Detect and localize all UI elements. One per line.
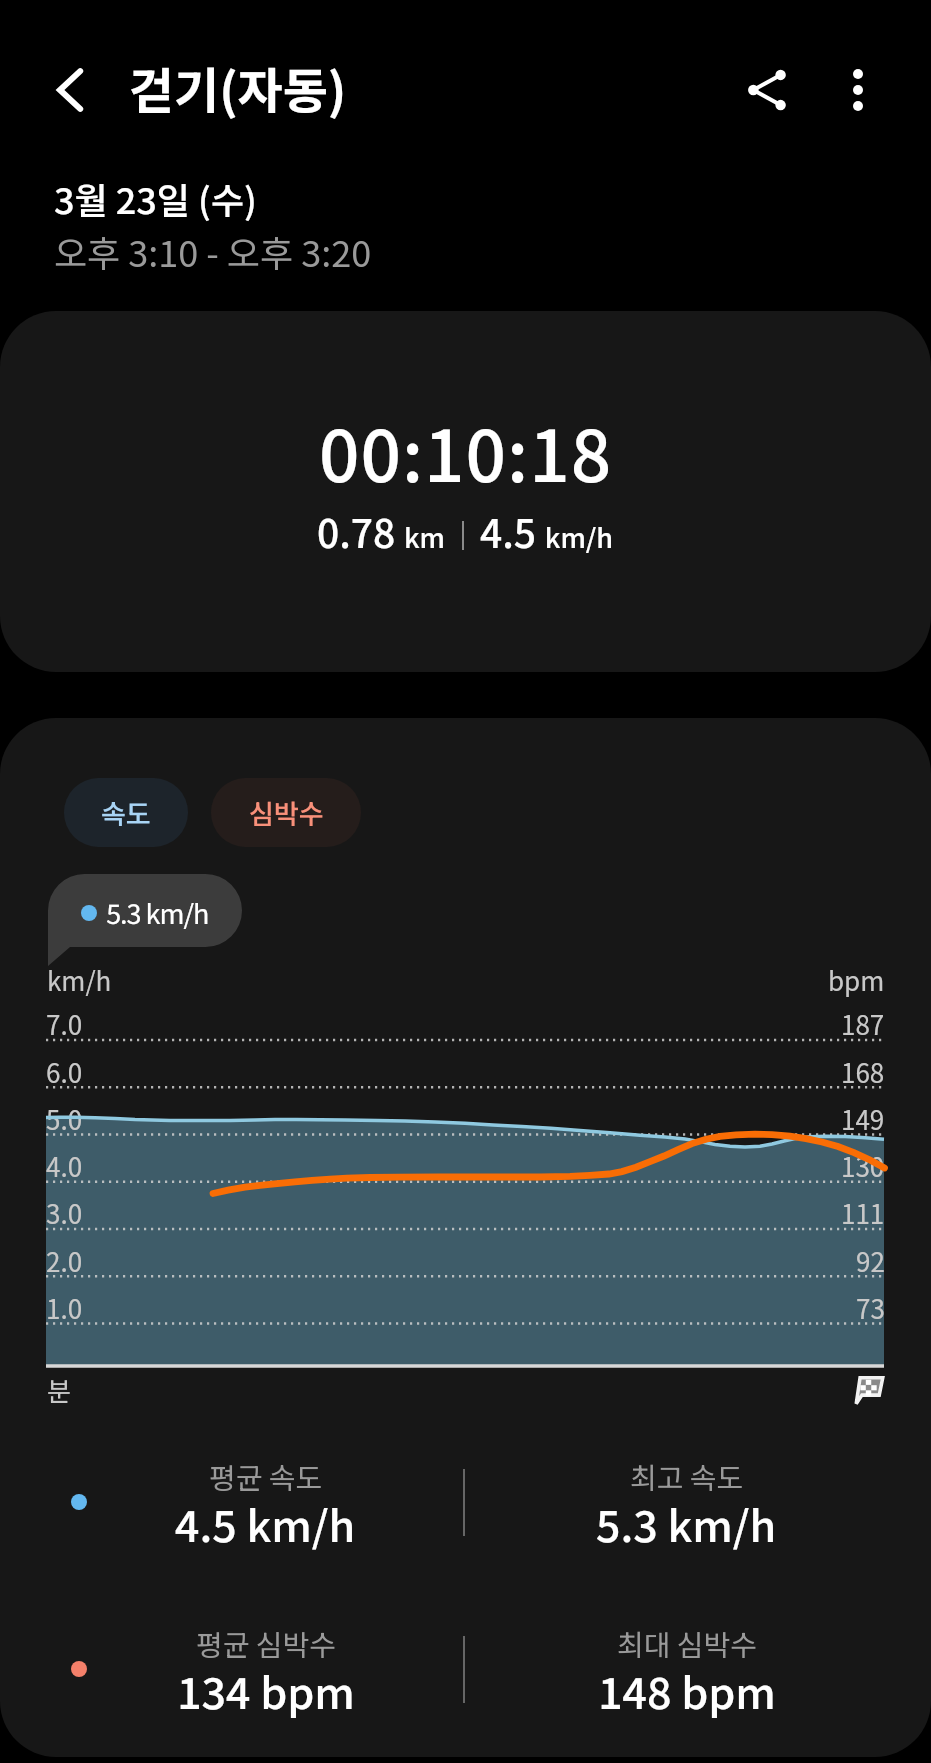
- button[interactable]: More options: [822, 54, 894, 126]
- staticText: 2.0: [46, 1242, 83, 1280]
- staticText: 4.5 km/h: [480, 503, 614, 559]
- staticText: 168: [841, 1053, 885, 1091]
- staticText: 149: [841, 1100, 885, 1138]
- staticText: 134 bpm: [177, 1659, 355, 1721]
- staticText: bpm: [828, 961, 885, 999]
- staticText: 3.0: [46, 1194, 83, 1232]
- button[interactable]: 속도: [64, 778, 188, 847]
- staticText: 평균 심박수: [196, 1622, 336, 1664]
- staticText: 5.3 km/h: [596, 1492, 777, 1554]
- staticText: 130: [841, 1147, 885, 1185]
- staticText: 148 bpm: [598, 1659, 776, 1721]
- staticText: 73: [856, 1289, 885, 1327]
- staticText: 3월 23일 (수): [54, 172, 257, 224]
- staticText: 7.0: [46, 1005, 83, 1043]
- staticText: 00:10:18: [319, 400, 613, 503]
- staticText: 111: [841, 1194, 885, 1232]
- staticText: 평균 속도: [209, 1455, 323, 1497]
- staticText: 최고 속도: [630, 1455, 744, 1497]
- button[interactable]: Share: [732, 54, 804, 126]
- button[interactable]: 심박수: [211, 778, 361, 847]
- staticText: km/h: [47, 961, 112, 999]
- staticText: 5.3 km/h: [106, 893, 209, 932]
- staticText: 4.5 km/h: [175, 1492, 356, 1554]
- staticText: 6.0: [46, 1053, 83, 1091]
- staticText: 1.0: [46, 1289, 83, 1327]
- button[interactable]: Back: [35, 54, 107, 126]
- staticText: 심박수: [249, 793, 324, 832]
- staticText: 최대 심박수: [617, 1622, 757, 1664]
- staticText: 분: [47, 1371, 71, 1409]
- staticText: 92: [856, 1242, 885, 1280]
- staticText: 걷기(자동): [129, 52, 347, 123]
- staticText: 4.0: [46, 1147, 83, 1185]
- staticText: 속도: [101, 793, 151, 832]
- staticText: 187: [841, 1005, 885, 1043]
- staticText: 0.78 km: [317, 503, 446, 559]
- staticText: 5.0: [46, 1100, 83, 1138]
- staticText: 오후 3:10 - 오후 3:20: [54, 225, 372, 277]
